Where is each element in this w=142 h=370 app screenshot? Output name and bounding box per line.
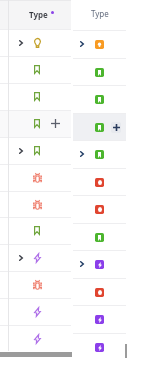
button[interactable]: [73, 140, 126, 168]
button[interactable]: [0, 83, 71, 110]
staticText: Type: [29, 9, 48, 20]
button[interactable]: [0, 110, 71, 137]
button[interactable]: [0, 244, 71, 271]
button[interactable]: [0, 137, 71, 164]
button[interactable]: [73, 195, 126, 223]
button[interactable]: [73, 58, 126, 86]
staticText: Type: [91, 8, 109, 19]
button[interactable]: [73, 85, 126, 113]
button[interactable]: [73, 30, 126, 58]
button[interactable]: Type: [29, 8, 51, 21]
button[interactable]: Type: [91, 8, 109, 21]
button[interactable]: [73, 250, 126, 278]
button[interactable]: [0, 271, 71, 298]
button[interactable]: [0, 191, 71, 218]
button[interactable]: [73, 305, 126, 333]
button[interactable]: [73, 223, 126, 251]
button[interactable]: [73, 278, 126, 306]
button[interactable]: [0, 325, 71, 352]
button[interactable]: Add: [73, 113, 126, 141]
button[interactable]: [0, 217, 71, 244]
button[interactable]: [0, 298, 71, 325]
other: Add: [111, 122, 121, 133]
button[interactable]: [0, 56, 71, 83]
button[interactable]: [0, 29, 71, 56]
button[interactable]: [73, 168, 126, 196]
button[interactable]: [0, 164, 71, 191]
button[interactable]: [73, 333, 126, 361]
